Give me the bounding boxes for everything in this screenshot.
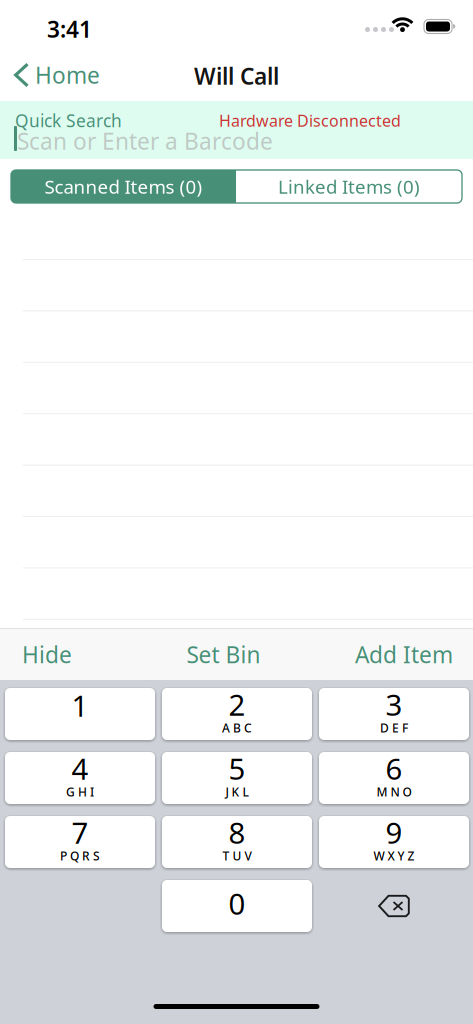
button[interactable]: 1 [5,688,155,740]
button[interactable]: 6 [319,752,469,804]
button[interactable]: 7 [5,816,155,868]
button[interactable]: Add Item [339,629,473,680]
staticText: Hide [22,639,72,669]
staticText: P Q R S [60,848,100,864]
staticText: Add Item [355,639,453,669]
button[interactable]: 2 [162,688,312,740]
button[interactable]: Scanned Items (0) [11,170,236,203]
staticText: Quick Search [15,109,122,132]
staticText: G H I [66,784,94,800]
staticText: 9 [385,813,402,852]
staticText: 3 [385,685,402,724]
button[interactable]: 8 [162,816,312,868]
staticText: Home [35,60,100,90]
button[interactable]: 3 [319,688,469,740]
staticText: A B C [222,720,252,736]
button[interactable]: Delete [319,880,469,932]
button[interactable]: 4 [5,752,155,804]
staticText: M N O [376,784,411,800]
staticText: 1 [71,686,88,725]
staticText: 5 [228,749,245,788]
button[interactable]: 5 [162,752,312,804]
staticText: T U V [222,848,251,864]
staticText: D E F [380,720,408,736]
staticText: W X Y Z [373,848,414,864]
staticText: Scan or Enter a Barcode [17,126,273,156]
staticText: 8 [228,813,245,852]
staticText: 4 [71,749,88,788]
button[interactable]: Hide [0,629,88,680]
staticText: J K L [225,784,248,800]
staticText: 2 [228,685,245,724]
staticText: Will Call [194,61,279,91]
button[interactable]: Set Bin [160,629,266,680]
staticText: 3:41 [47,14,92,44]
button[interactable]: Linked Items (0) [236,170,462,203]
staticText: Set Bin [186,639,260,669]
staticText: Hardware Disconnected [219,110,401,131]
button[interactable]: 9 [319,816,469,868]
staticText: 7 [71,813,88,852]
staticText: 0 [228,884,245,923]
staticText: Scanned Items (0) [44,174,202,199]
button[interactable]: 0 [162,880,312,932]
button[interactable]: Home [0,53,112,97]
staticText: Linked Items (0) [278,174,420,199]
staticText: 6 [385,749,402,788]
